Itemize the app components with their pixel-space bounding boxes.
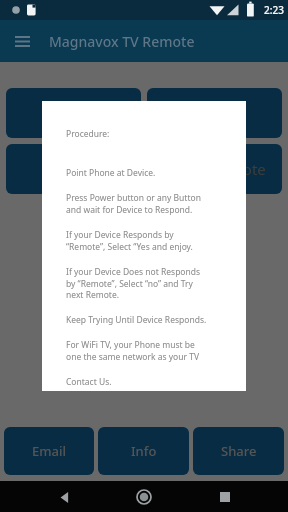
button[interactable]	[6, 144, 141, 194]
staticText: Procedure:	[66, 128, 110, 140]
button[interactable]	[6, 88, 141, 138]
staticText: Remote	[211, 159, 266, 179]
staticText: If your Device Does not Responds by “Rem…	[66, 266, 201, 301]
button[interactable]: Home	[129, 482, 159, 512]
staticText: 2:23	[264, 3, 284, 17]
button[interactable]: Procedure:	[42, 101, 246, 391]
staticText: If your Device Responds by “Remote”, Sel…	[66, 229, 193, 253]
button[interactable]: Recent apps	[211, 483, 239, 511]
staticText: Point Phone at Device.	[66, 167, 156, 179]
button[interactable]	[147, 88, 282, 138]
button[interactable]: Remote	[147, 144, 282, 194]
staticText: Press Power button or any Button and wai…	[66, 192, 201, 216]
button[interactable]: Share	[193, 427, 284, 475]
staticText: Contact Us.	[66, 376, 112, 388]
button[interactable]: Open navigation menu	[7, 26, 37, 56]
button[interactable]: Email	[4, 427, 94, 475]
staticText: Email	[32, 442, 67, 460]
staticText: Share	[221, 442, 257, 460]
staticText: Info	[131, 442, 157, 460]
staticText: Magnavox TV Remote	[49, 32, 195, 51]
button[interactable]: Back	[51, 483, 79, 511]
staticText: For WiFi TV, your Phone must be one the …	[66, 339, 200, 363]
button[interactable]: Info	[98, 427, 189, 475]
staticText: Keep Trying Until Device Responds.	[66, 314, 207, 326]
